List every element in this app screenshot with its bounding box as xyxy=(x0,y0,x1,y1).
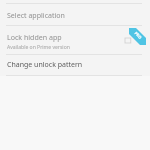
staticText: PRO xyxy=(134,31,143,40)
staticText: Change unlock pattern xyxy=(7,60,83,70)
staticText: Lock hidden app xyxy=(7,32,62,42)
button[interactable]: Change unlock pattern xyxy=(0,55,150,75)
button[interactable]: Lock hidden app checkbox xyxy=(119,32,137,50)
staticText: Select application xyxy=(7,10,65,20)
button[interactable]: Lock hidden app xyxy=(0,26,150,54)
button[interactable]: Select application xyxy=(0,4,150,25)
staticText: Available on Prime version xyxy=(7,44,70,51)
